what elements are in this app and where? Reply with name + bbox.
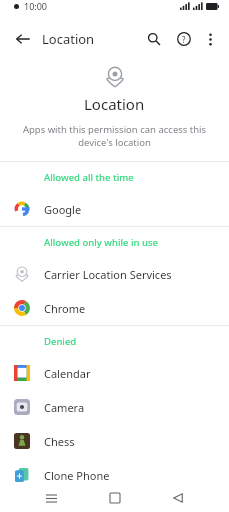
staticText: ? [182, 34, 186, 45]
staticText: Camera [44, 400, 85, 415]
staticText: Allowed only while in use [44, 236, 158, 249]
button[interactable]: Help [171, 26, 197, 52]
staticText: Chess [44, 434, 75, 449]
button[interactable]: Back [165, 485, 191, 511]
button[interactable]: Chess [0, 424, 229, 458]
staticText: Denied [44, 335, 77, 348]
button[interactable]: Search [141, 26, 167, 52]
button[interactable]: Calendar [0, 356, 229, 390]
staticText: Chrome [44, 301, 86, 316]
button[interactable]: Google [0, 192, 229, 226]
button[interactable]: Camera [0, 390, 229, 424]
staticText: Location [42, 30, 95, 48]
button[interactable]: Clone Phone [0, 458, 229, 492]
button[interactable]: Carrier Location Services [0, 257, 229, 291]
staticText: Location [84, 94, 145, 114]
staticText: Apps with this permission can access thi… [22, 123, 207, 149]
button[interactable]: Chrome [0, 291, 229, 325]
staticText: Clone Phone [44, 468, 110, 483]
staticText: Google [44, 202, 82, 217]
button[interactable]: Home [102, 485, 128, 511]
staticText: Carrier Location Services [44, 267, 172, 282]
button[interactable]: Back [10, 26, 36, 52]
staticText: 10:00 [24, 0, 48, 12]
button[interactable]: Recents [38, 485, 64, 511]
button[interactable]: More options [199, 28, 221, 50]
staticText: Calendar [44, 366, 91, 381]
staticText: Allowed all the time [44, 171, 134, 184]
